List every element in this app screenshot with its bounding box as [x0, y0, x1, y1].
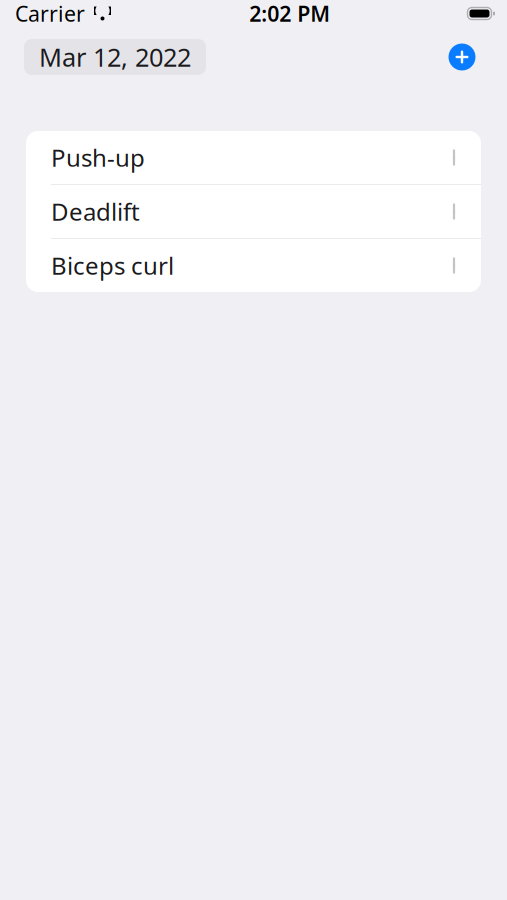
button[interactable]: Push-up	[26, 131, 481, 184]
button[interactable]: Biceps curl	[26, 239, 481, 292]
button[interactable]: Mar 12, 2022	[24, 39, 206, 75]
staticText: 2:02 PM	[249, 0, 330, 28]
staticText: Mar 12, 2022	[39, 40, 191, 74]
button[interactable]: Add exercise	[440, 35, 484, 79]
staticText: Push-up	[51, 142, 145, 173]
staticText: Deadlift	[51, 196, 140, 227]
staticText: Carrier	[15, 0, 85, 28]
button[interactable]: Deadlift	[26, 185, 481, 238]
staticText: Biceps curl	[51, 250, 174, 281]
